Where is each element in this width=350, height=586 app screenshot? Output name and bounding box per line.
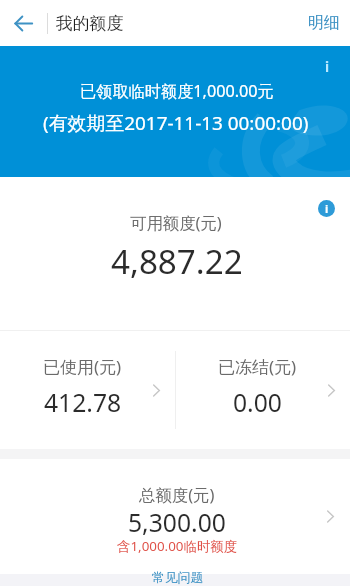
button[interactable]: Back bbox=[0, 0, 47, 46]
staticText: 5,300.00 bbox=[128, 506, 226, 540]
staticText: 总额度(元) bbox=[139, 483, 215, 505]
button[interactable]: 明细 bbox=[292, 0, 350, 46]
staticText: (有效期至2017-11-13 00:00:00) bbox=[43, 110, 309, 136]
staticText: 已冻结(元) bbox=[218, 355, 297, 378]
button[interactable]: Info bbox=[317, 57, 337, 77]
button[interactable]: 总额度(元) bbox=[0, 459, 350, 574]
staticText: i bbox=[325, 201, 329, 216]
staticText: 4,887.22 bbox=[111, 239, 243, 284]
staticText: 已领取临时额度1,000.00元 bbox=[80, 80, 274, 102]
staticText: 412.78 bbox=[44, 386, 122, 420]
button[interactable]: 常见问题 bbox=[140, 568, 216, 586]
staticText: 常见问题 bbox=[152, 570, 204, 586]
button[interactable]: Info bbox=[315, 197, 337, 219]
staticText: i bbox=[325, 58, 330, 76]
staticText: 可用额度(元) bbox=[130, 211, 222, 233]
staticText: 0.00 bbox=[233, 386, 282, 420]
staticText: 已使用(元) bbox=[43, 355, 122, 378]
staticText: 我的额度 bbox=[56, 13, 124, 34]
staticText: 含1,000.00临时额度 bbox=[117, 537, 238, 555]
button[interactable]: 已使用(元) bbox=[0, 331, 175, 449]
staticText: 明细 bbox=[308, 13, 340, 33]
button[interactable]: 已冻结(元) bbox=[175, 331, 350, 449]
